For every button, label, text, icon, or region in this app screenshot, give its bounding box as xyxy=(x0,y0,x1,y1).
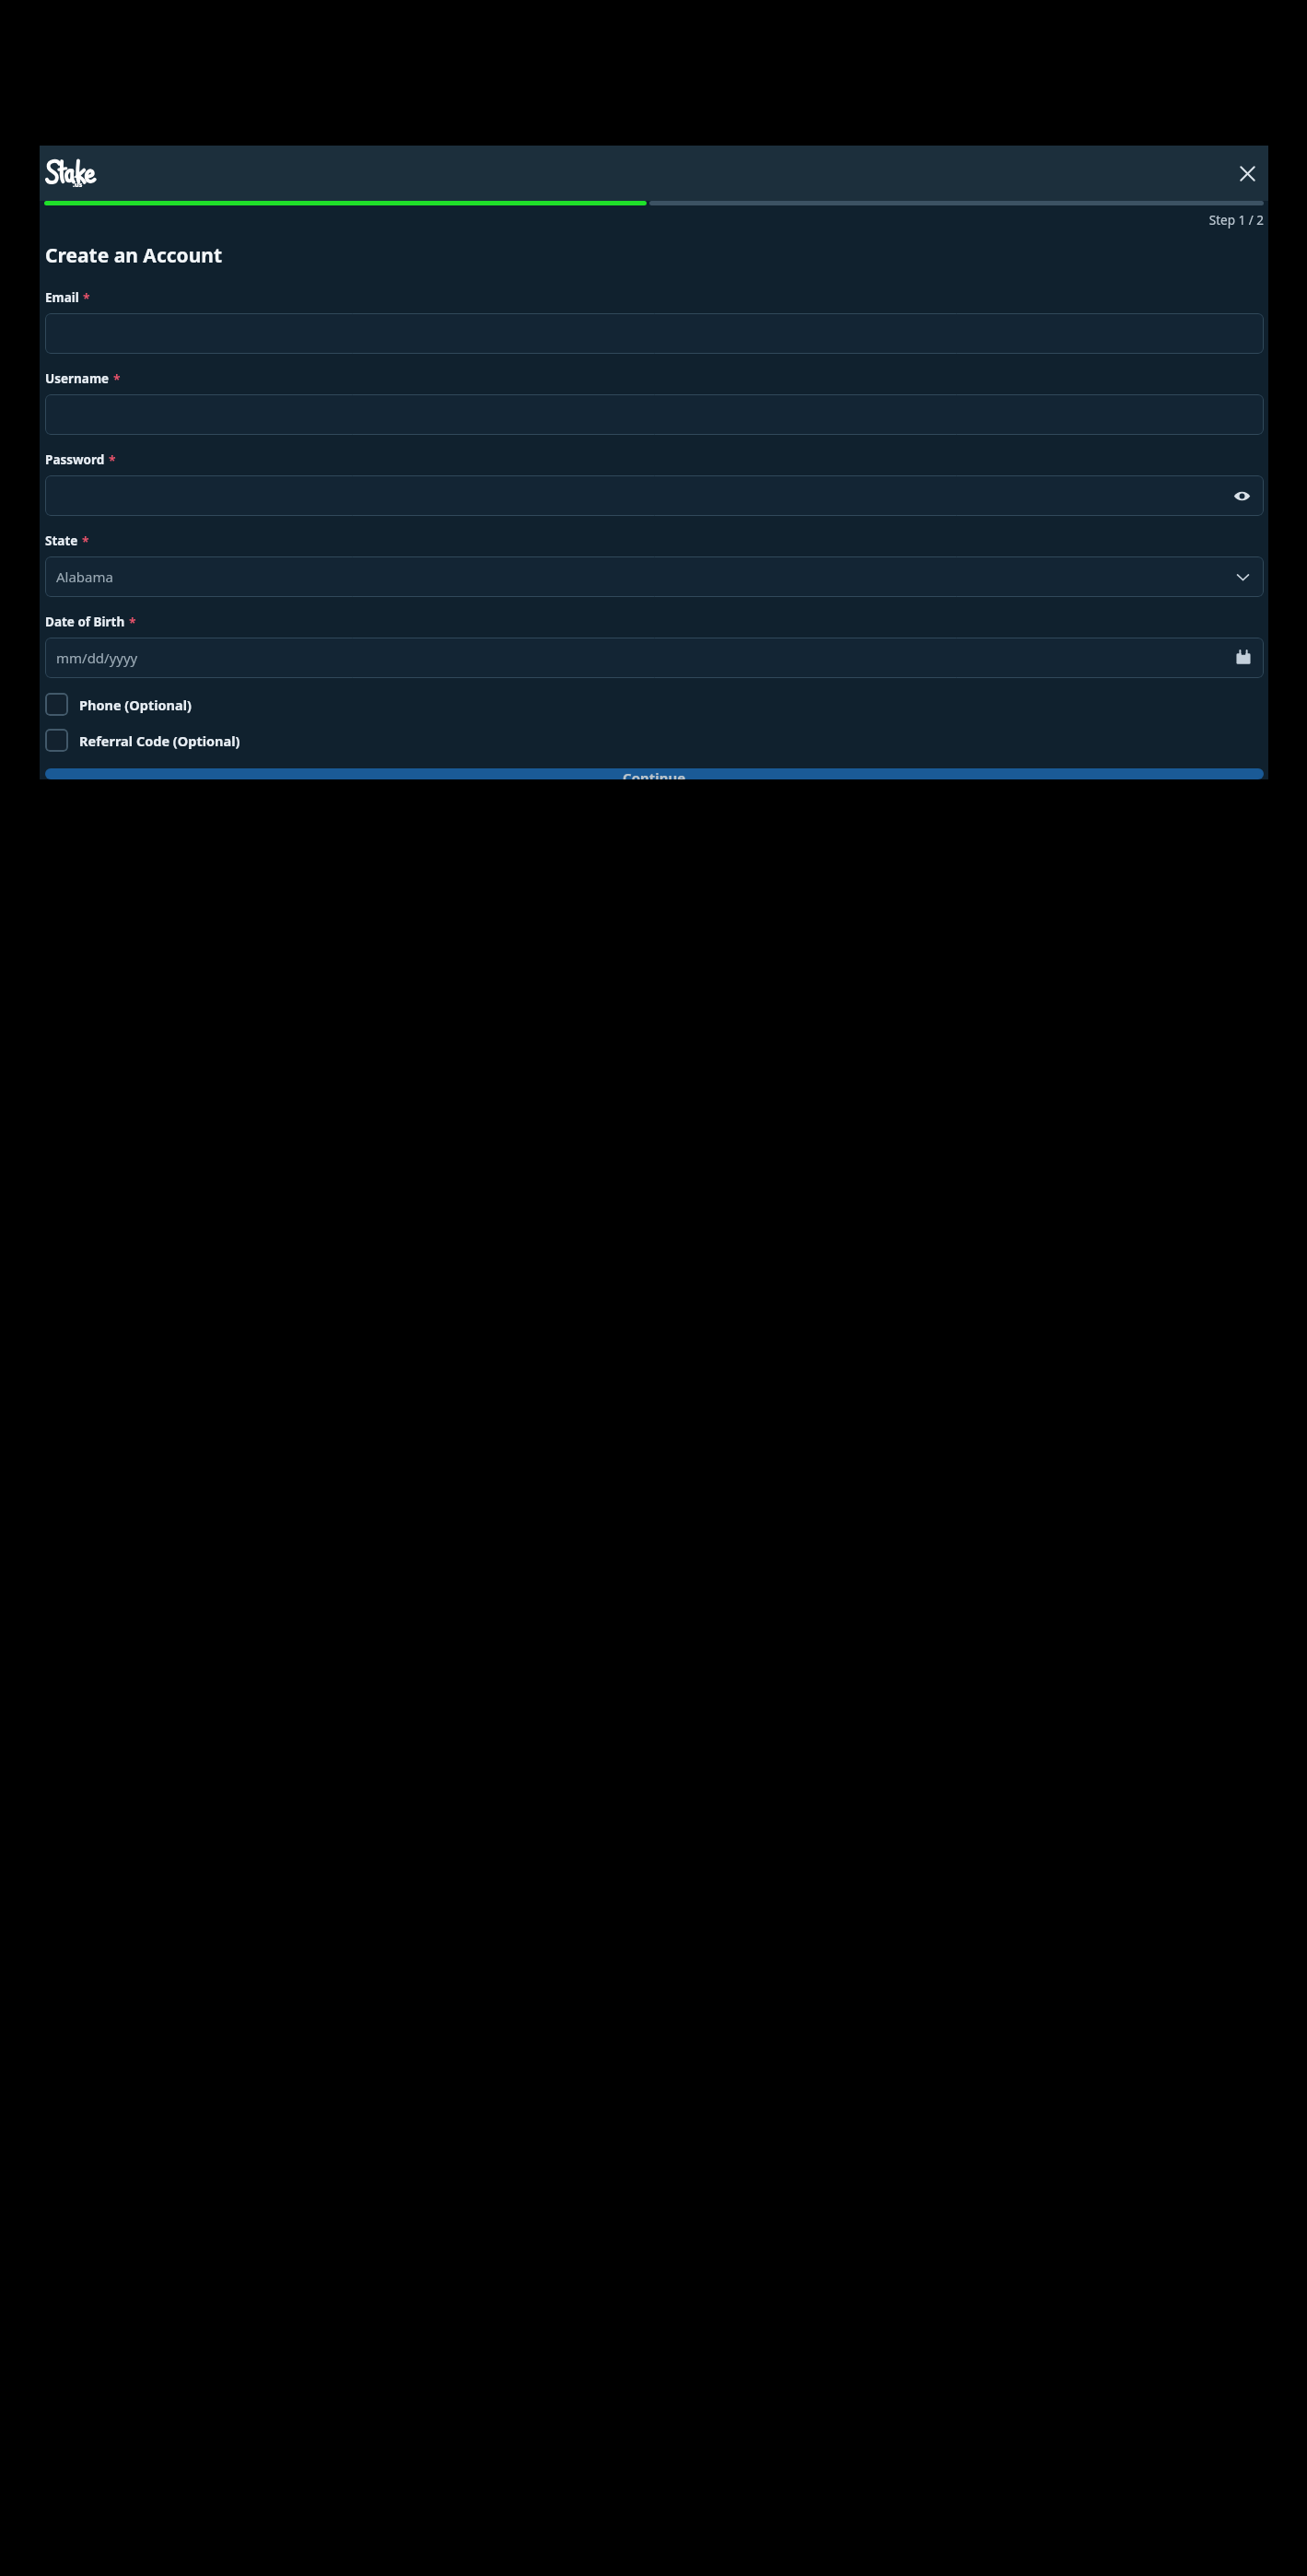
button[interactable]: Referral Code (Optional) xyxy=(45,729,1264,752)
button[interactable]: Continue xyxy=(45,768,1264,779)
staticText: Username xyxy=(45,370,110,387)
staticText: * xyxy=(109,451,116,469)
staticText: Referral Code (Optional) xyxy=(79,732,240,750)
button[interactable]: Show password xyxy=(45,475,1264,516)
staticText: Continue xyxy=(623,768,686,779)
button[interactable] xyxy=(45,394,1264,435)
staticText: Email xyxy=(45,289,79,306)
staticText: Password xyxy=(45,451,105,468)
button[interactable]: Phone (Optional) xyxy=(45,693,1264,716)
button[interactable]: Close xyxy=(1228,154,1266,193)
staticText: * xyxy=(129,614,136,631)
staticText: Create an Account xyxy=(45,242,223,269)
button[interactable]: Alabama xyxy=(45,556,1264,597)
staticText: * xyxy=(113,370,121,388)
button[interactable]: mm/dd/yyyy xyxy=(45,638,1264,678)
staticText: * xyxy=(83,289,90,307)
staticText: Step 1 / 2 xyxy=(45,212,1264,228)
other: Stake.us xyxy=(45,158,106,189)
staticText: Alabama xyxy=(56,568,113,586)
button[interactable]: Pick date xyxy=(1234,649,1253,667)
button[interactable]: Show password xyxy=(1231,485,1253,507)
staticText: mm/dd/yyyy xyxy=(56,649,138,667)
staticText: Date of Birth xyxy=(45,614,125,630)
button[interactable] xyxy=(45,313,1264,354)
staticText: * xyxy=(82,533,89,550)
staticText: State xyxy=(45,533,78,549)
staticText: Phone (Optional) xyxy=(79,696,192,714)
staticText: .us xyxy=(73,181,83,190)
